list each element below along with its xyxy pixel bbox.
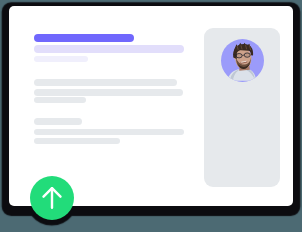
button[interactable]: Article headline xyxy=(34,34,184,62)
button[interactable]: Author panel xyxy=(204,28,280,187)
button[interactable]: Profile photo xyxy=(221,39,264,82)
button[interactable]: Upload xyxy=(30,176,74,220)
button[interactable]: Paragraph two xyxy=(34,118,184,144)
button[interactable]: Paragraph one xyxy=(34,79,183,103)
